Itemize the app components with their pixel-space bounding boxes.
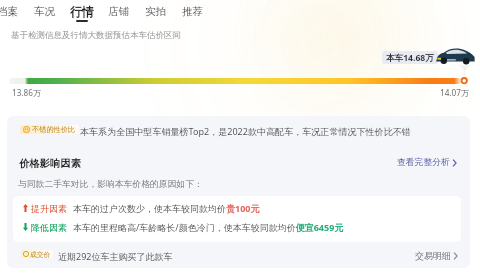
staticText: 近期292位车主购买了此款车 xyxy=(58,250,173,262)
staticText: 本车的里程略高/车龄略长/颜色冷门，使本车较同款均价便宜6459元 xyxy=(73,221,344,233)
staticText: 本车系为全国中型车销量榜Top2，是2022款中高配车，车况正常情况下性价比不错 xyxy=(80,125,411,137)
staticText: 行情 xyxy=(70,4,94,19)
button[interactable]: 查看完整分析 xyxy=(397,157,457,168)
staticText: 13.86万 xyxy=(12,87,42,98)
button[interactable]: 行情 xyxy=(63,0,100,26)
staticText: 档案 xyxy=(0,5,18,18)
button[interactable]: 档案 xyxy=(0,0,26,26)
staticText: 不错的性价比 xyxy=(32,125,76,134)
staticText: 交易明细 xyxy=(415,250,451,261)
staticText: 14.07万 xyxy=(440,87,470,98)
staticText: 与同款二手车对比，影响本车价格的原因如下： xyxy=(18,179,203,190)
staticText: 实拍 xyxy=(145,5,166,18)
staticText: 本车的过户次数少，使本车较同款均价贵100元 xyxy=(73,202,260,214)
staticText: 本车14.68万 xyxy=(386,52,434,64)
staticText: 车况 xyxy=(34,5,55,18)
staticText: 店铺 xyxy=(108,5,129,18)
staticText: 推荐 xyxy=(182,5,203,18)
staticText: 成交价 xyxy=(30,250,51,258)
staticText: 价格影响因素 xyxy=(19,157,81,170)
button[interactable]: 推荐 xyxy=(174,0,211,26)
button[interactable]: 车况 xyxy=(26,0,63,26)
staticText: 查看完整分析 xyxy=(397,157,450,168)
button[interactable]: 交易明细 xyxy=(415,250,458,261)
button[interactable]: 店铺 xyxy=(100,0,137,26)
button[interactable]: 实拍 xyxy=(137,0,174,26)
staticText: 降低因素 xyxy=(31,222,67,233)
staticText: 基于检测信息及行情大数据预估本车估价区间 xyxy=(11,30,181,41)
staticText: 提升因素 xyxy=(31,203,67,214)
